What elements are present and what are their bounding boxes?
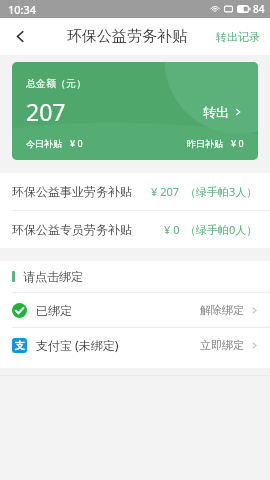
- button[interactable]: 转出记录: [206, 18, 270, 55]
- staticText: 已绑定: [36, 303, 72, 318]
- button[interactable]: 已绑定: [0, 293, 270, 327]
- staticText: （绿手帕0人）: [185, 222, 258, 237]
- staticText: 解除绑定: [200, 303, 244, 317]
- staticText: 环保公益专员劳务补贴: [12, 222, 132, 237]
- staticText: ¥ 207: [151, 184, 180, 199]
- button[interactable]: 环保公益事业劳务补贴: [0, 173, 270, 210]
- staticText: 总金额（元）: [26, 77, 86, 90]
- staticText: （绿手帕3人）: [185, 184, 258, 199]
- staticText: 转出: [203, 104, 229, 120]
- staticText: 转出记录: [216, 30, 260, 44]
- staticText: 10:34: [8, 2, 37, 17]
- button[interactable]: 总金额（元）: [12, 62, 258, 160]
- button[interactable]: Back: [0, 18, 40, 55]
- staticText: 207: [26, 96, 66, 127]
- staticText: 支付宝 (未绑定): [36, 337, 119, 353]
- staticText: 环保公益事业劳务补贴: [12, 184, 132, 199]
- staticText: 请点击绑定: [23, 269, 83, 284]
- staticText: ¥ 0: [231, 137, 244, 149]
- staticText: 立即绑定: [200, 338, 244, 352]
- button[interactable]: 转出: [199, 100, 246, 124]
- staticText: ¥ 0: [164, 222, 180, 237]
- staticText: 今日补贴: [26, 138, 62, 149]
- button[interactable]: 支: [0, 328, 270, 362]
- button[interactable]: 环保公益专员劳务补贴: [0, 211, 270, 248]
- staticText: 环保公益劳务补贴: [67, 27, 187, 46]
- staticText: 支: [15, 339, 25, 352]
- staticText: 昨日补贴: [187, 138, 223, 149]
- staticText: ¥ 0: [70, 137, 83, 149]
- staticText: 84: [253, 2, 265, 16]
